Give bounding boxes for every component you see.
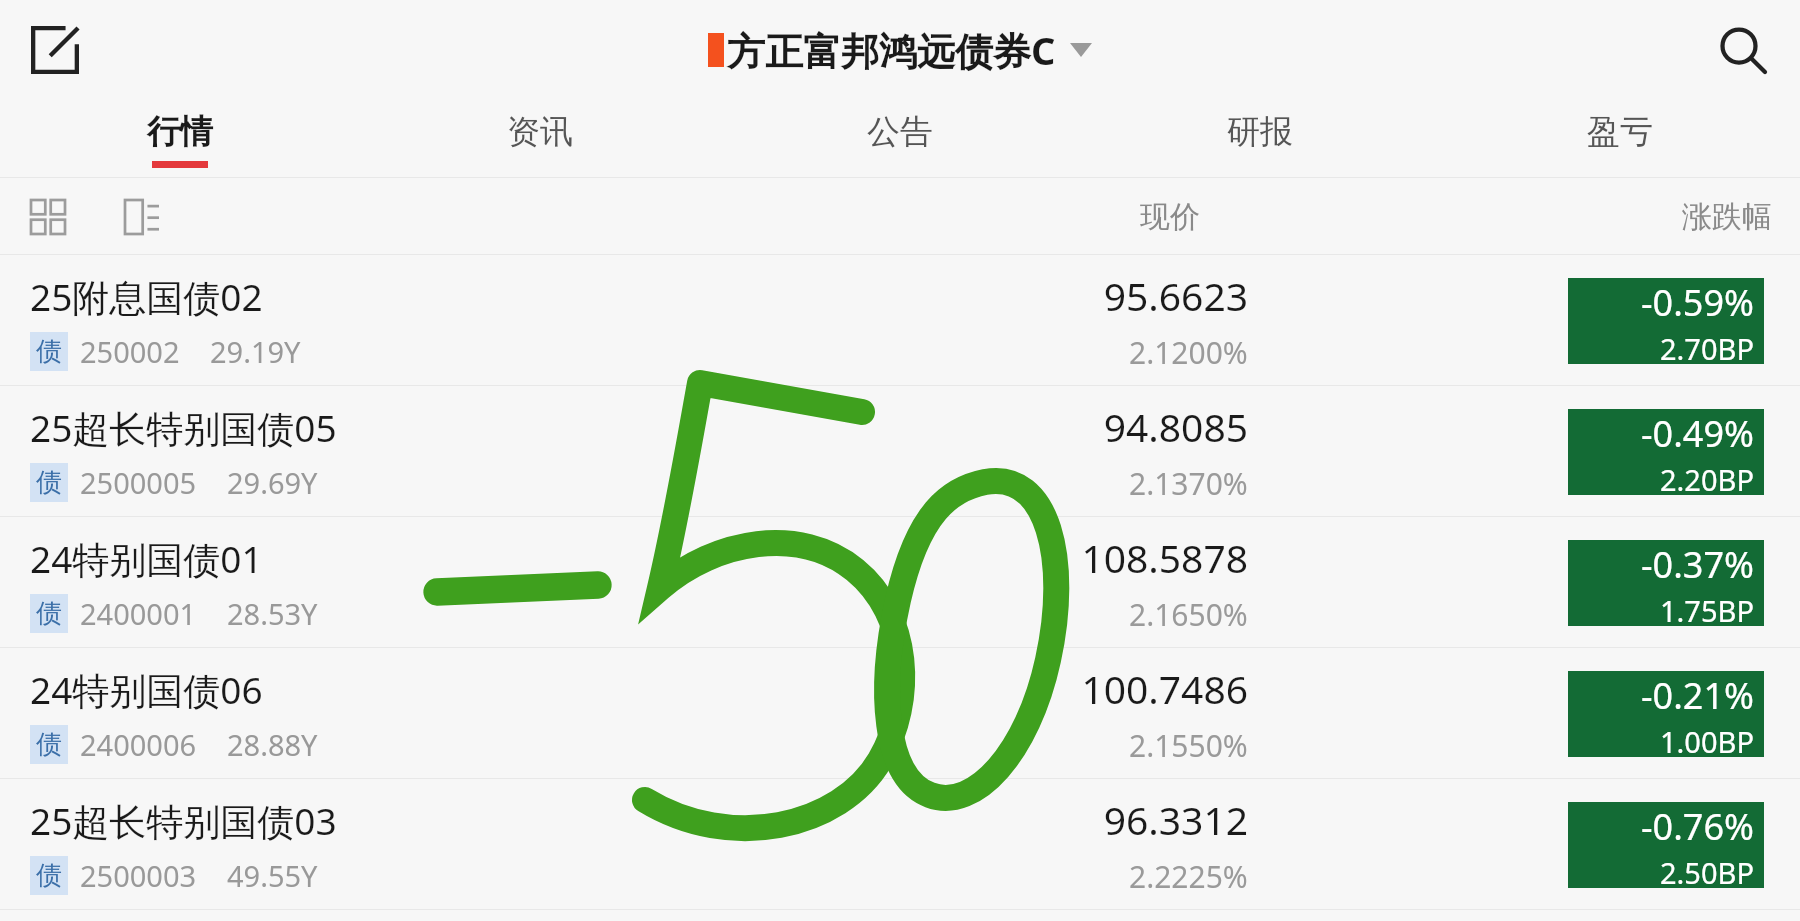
staticText: 29.19Y [210,332,301,371]
staticText: 2.1200% [1129,332,1248,373]
staticText: 现价 [1140,198,1200,236]
staticText: -0.59% [1641,278,1754,327]
staticText: 250002 [80,332,180,371]
staticText: 债 [36,597,62,630]
staticText: 96.3312 [1103,793,1248,846]
staticText: 24特别国债06 [30,664,263,715]
staticText: 94.8085 [1103,400,1248,453]
staticText: 108.5878 [1081,531,1248,584]
staticText: 方正富邦鸿远债券C [727,24,1056,76]
staticText: -0.37% [1641,540,1754,589]
button[interactable]: 盈亏 [1440,100,1800,178]
button[interactable]: 24特别国债06 [0,648,1800,779]
button[interactable]: Grid view [20,189,76,245]
staticText: 2.50BP [1660,853,1754,888]
staticText: 涨跌幅 [1682,198,1772,236]
staticText: 2.70BP [1660,329,1754,364]
button[interactable]: Search [1700,7,1786,93]
staticText: 债 [36,728,62,761]
staticText: 1.75BP [1660,591,1754,626]
staticText: 盈亏 [1587,111,1653,153]
staticText: -0.21% [1641,671,1754,720]
staticText: 2.1550% [1129,725,1248,766]
staticText: 25超长特别国债05 [30,402,337,453]
button[interactable]: 24特别国债01 [0,517,1800,648]
staticText: 债 [36,466,62,499]
staticText: 25超长特别国债03 [30,795,337,846]
staticText: 2500003 [80,856,197,895]
button[interactable]: Sort [114,189,170,245]
staticText: 2.1370% [1129,463,1248,504]
button[interactable]: 资讯 [360,100,720,178]
staticText: 债 [36,859,62,892]
staticText: 2.20BP [1660,460,1754,495]
staticText: 95.6623 [1103,269,1248,322]
staticText: 49.55Y [227,856,318,895]
button[interactable]: 25附息国债02 [0,255,1800,386]
staticText: 2.2225% [1129,856,1248,897]
staticText: 2.1650% [1129,594,1248,635]
button[interactable]: 公告 [720,100,1080,178]
staticText: 行情 [147,111,213,153]
staticText: 100.7486 [1081,662,1248,715]
staticText: 29.69Y [227,463,318,502]
staticText: 2400001 [80,594,197,633]
staticText: 28.53Y [227,594,318,633]
staticText: 债 [36,335,62,368]
button[interactable]: 方正富邦鸿远债券C [708,24,1092,76]
staticText: 资讯 [507,111,573,153]
staticText: 公告 [867,111,933,153]
button[interactable]: 研报 [1080,100,1440,178]
button[interactable]: 25超长特别国债03 [0,779,1800,910]
staticText: 24特别国债01 [30,533,263,584]
button[interactable]: 行情 [0,100,360,178]
staticText: 25附息国债02 [30,271,263,322]
staticText: 1.00BP [1660,722,1754,757]
staticText: 2500005 [80,463,197,502]
staticText: -0.49% [1641,409,1754,458]
button[interactable]: Edit watchlist [12,7,98,93]
staticText: -0.76% [1641,802,1754,851]
staticText: 研报 [1227,111,1293,153]
staticText: 28.88Y [227,725,318,764]
staticText: 2400006 [80,725,197,764]
button[interactable]: 25超长特别国债05 [0,386,1800,517]
